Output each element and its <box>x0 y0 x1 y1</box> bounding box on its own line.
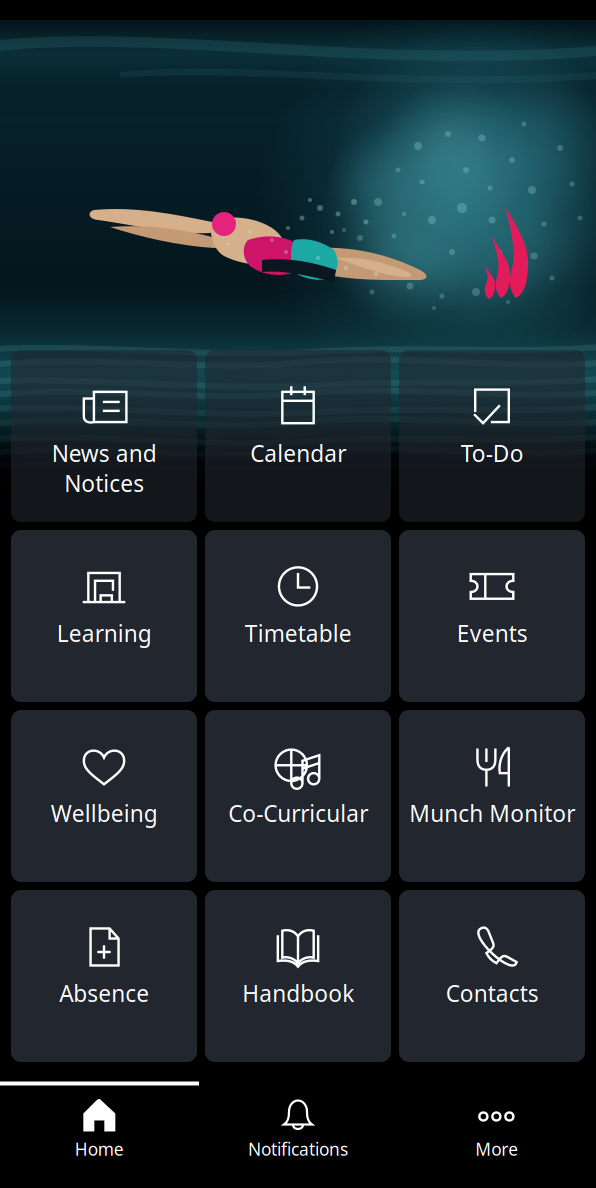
button[interactable]: Timetable <box>205 530 391 702</box>
staticText: Handbook <box>242 978 354 1008</box>
button[interactable]: Contacts <box>399 890 585 1062</box>
staticText: News and Notices <box>51 438 156 498</box>
staticText: Munch Monitor <box>409 798 575 828</box>
button[interactable]: Co-Curricular <box>205 710 391 882</box>
button[interactable]: Absence <box>11 890 197 1062</box>
staticText: Wellbeing <box>50 798 157 828</box>
staticText: Absence <box>59 978 149 1008</box>
button[interactable]: News and Notices <box>11 350 197 522</box>
staticText: Timetable <box>244 618 351 648</box>
staticText: Notifications <box>248 1137 348 1160</box>
staticText: More <box>475 1137 518 1160</box>
button[interactable]: Munch Monitor <box>399 710 585 882</box>
button[interactable]: More <box>397 1085 596 1184</box>
staticText: Home <box>75 1137 124 1160</box>
staticText: Events <box>456 618 527 648</box>
staticText: Learning <box>56 618 151 648</box>
button[interactable]: Handbook <box>205 890 391 1062</box>
button[interactable]: Events <box>399 530 585 702</box>
button[interactable]: Learning <box>11 530 197 702</box>
button[interactable]: Wellbeing <box>11 710 197 882</box>
button[interactable]: Notifications <box>199 1085 397 1184</box>
staticText: Contacts <box>445 978 538 1008</box>
button[interactable]: To-Do <box>399 350 585 522</box>
button[interactable]: Home <box>0 1085 199 1184</box>
button[interactable]: Calendar <box>205 350 391 522</box>
staticText: To-Do <box>460 438 523 468</box>
staticText: Calendar <box>250 438 346 468</box>
staticText: Co-Curricular <box>228 798 368 828</box>
